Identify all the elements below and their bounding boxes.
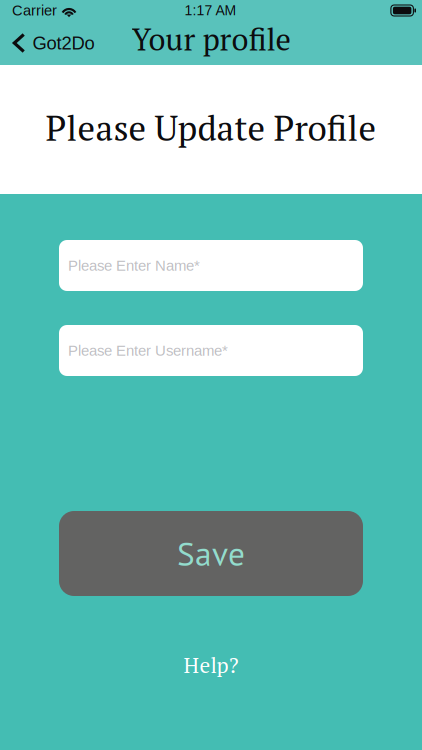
staticText: Your profile [131, 19, 290, 59]
staticText: Save [177, 532, 245, 575]
button[interactable]: Please Enter Username* [59, 325, 363, 376]
staticText: Please Enter Username* [68, 342, 228, 359]
staticText: 1:17 AM [184, 3, 236, 18]
staticText: Got2Do [32, 33, 94, 53]
button[interactable]: Help? [59, 653, 363, 677]
staticText: Please Enter Name* [68, 257, 200, 274]
button[interactable]: Save [59, 511, 363, 596]
staticText: Carrier [12, 2, 57, 19]
button[interactable]: Got2Do [0, 21, 106, 65]
button[interactable]: Please Enter Name* [59, 240, 363, 291]
staticText: Help? [183, 651, 238, 679]
staticText: Please Update Profile [45, 104, 376, 151]
